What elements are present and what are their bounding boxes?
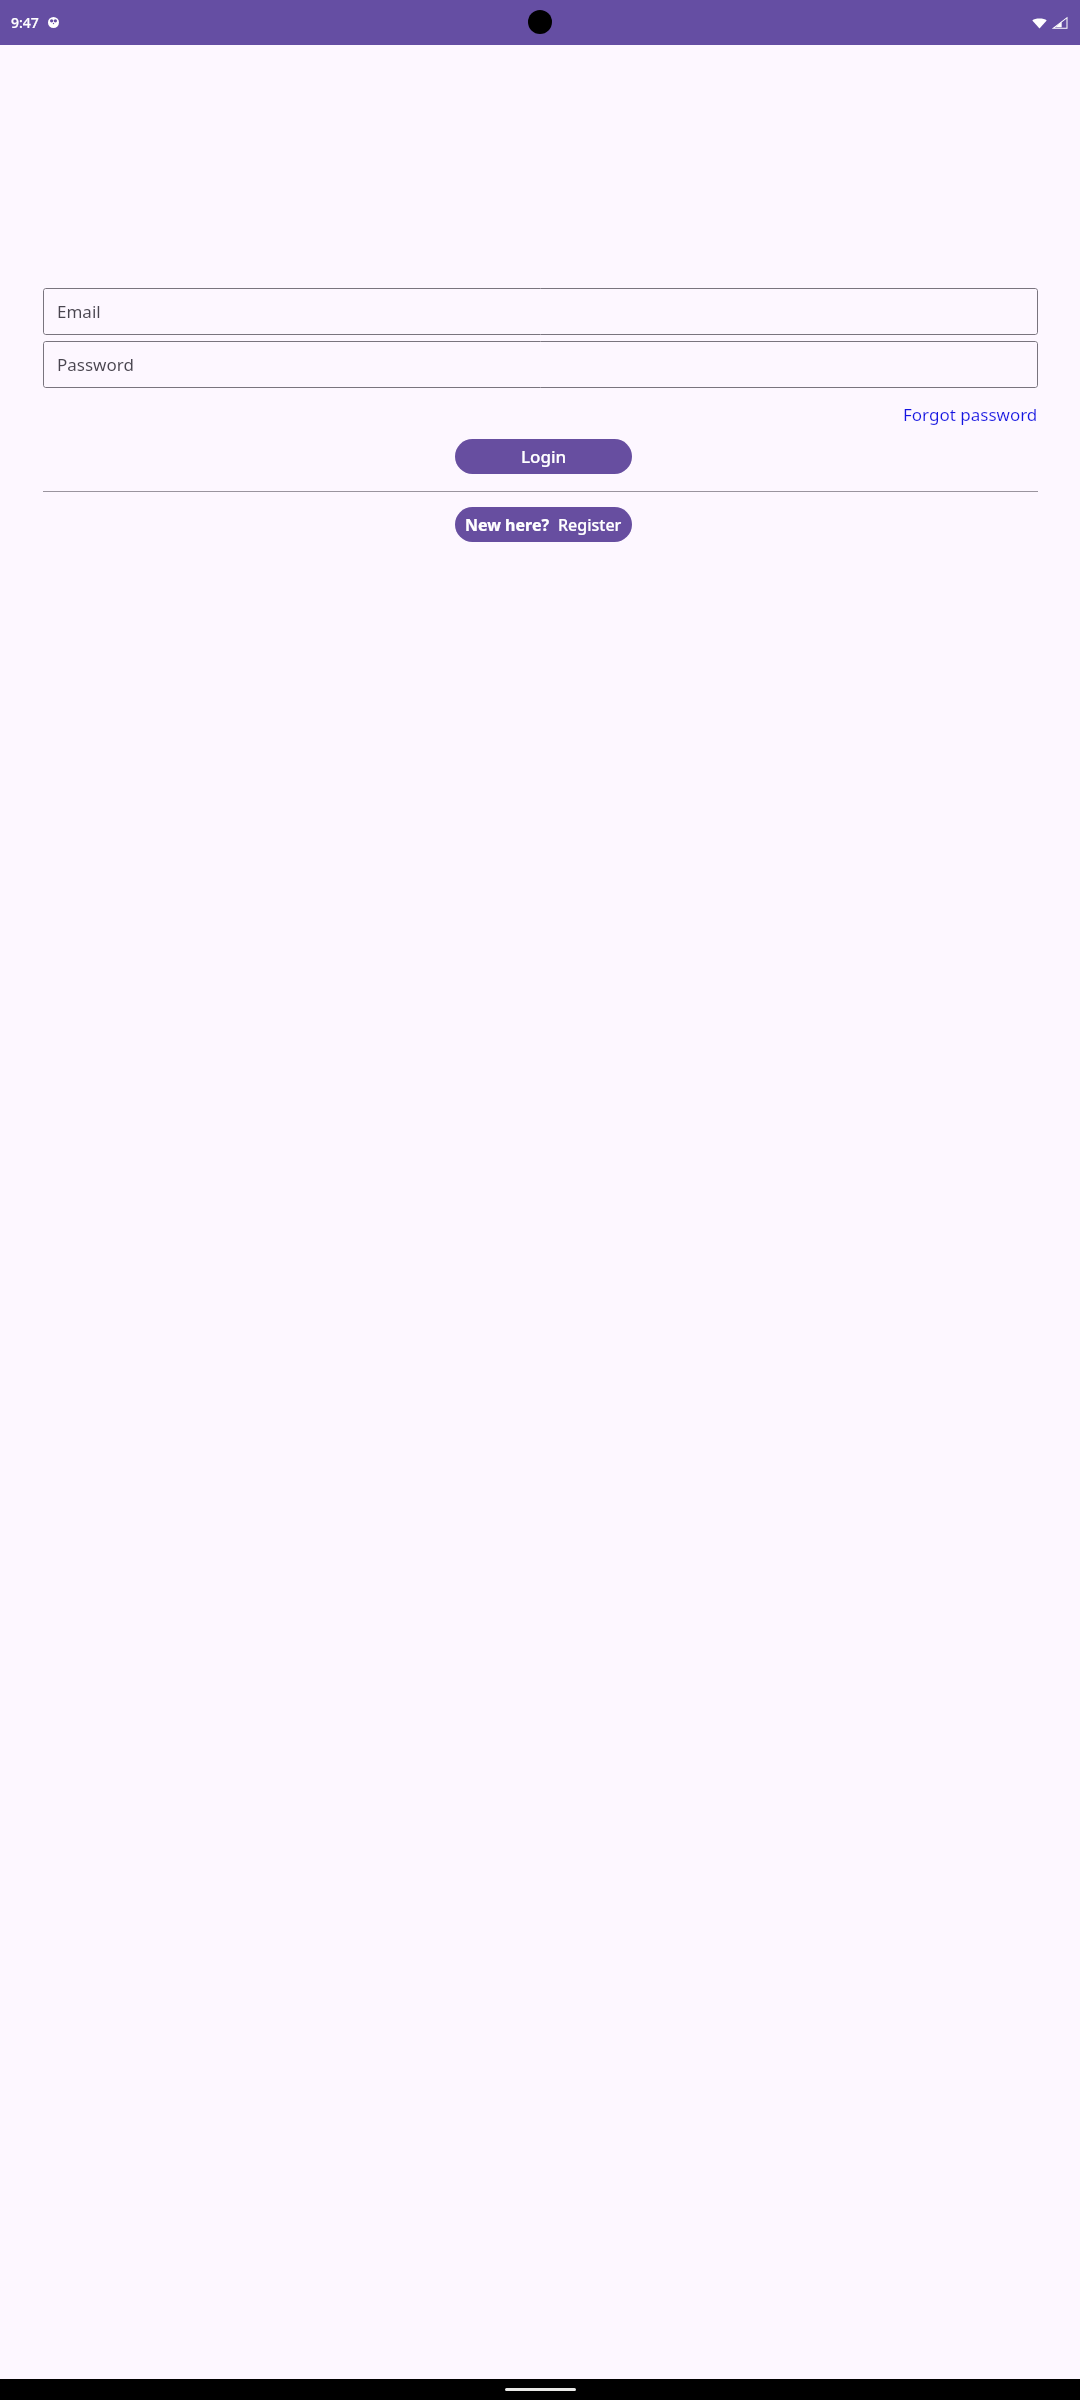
- staticText: New here?: [465, 514, 550, 536]
- button[interactable]: Login: [455, 439, 632, 474]
- staticText: Password: [57, 353, 134, 376]
- button[interactable]: Email: [43, 288, 1038, 335]
- button[interactable]: Password: [43, 341, 1038, 388]
- button[interactable]: Forgot password: [903, 401, 1038, 428]
- button[interactable]: New here?: [455, 507, 632, 542]
- staticText: 9:47: [11, 13, 39, 32]
- staticText: Register: [558, 514, 622, 536]
- staticText: Email: [57, 300, 101, 323]
- staticText: Login: [521, 445, 567, 468]
